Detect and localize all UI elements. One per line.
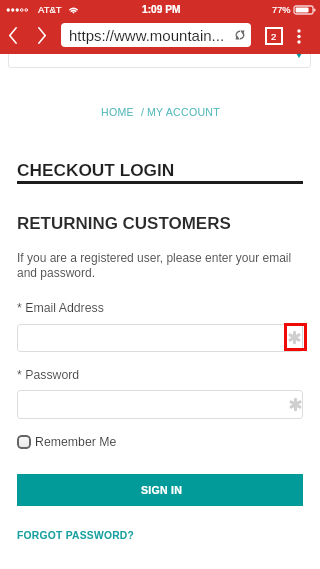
staticText: / — [141, 106, 144, 118]
staticText: HOME — [101, 106, 134, 118]
staticText: AT&T — [38, 4, 62, 15]
staticText: https://www.mountain... — [69, 27, 225, 44]
staticText: RETURNING CUSTOMERS — [17, 214, 231, 233]
staticText: CHECKOUT LOGIN — [17, 160, 175, 179]
button[interactable] — [17, 324, 303, 352]
staticText: * Password — [17, 368, 80, 382]
button[interactable] — [17, 390, 303, 419]
staticText: If you are a registered user, please ent… — [17, 251, 307, 279]
button[interactable]: SIGN IN — [17, 474, 303, 506]
staticText: * Email Address — [17, 301, 104, 315]
button[interactable]: Remember Me — [17, 435, 117, 449]
staticText: SIGN IN — [141, 484, 183, 496]
staticText: MY ACCOUNT — [147, 106, 220, 118]
staticText: 2 — [271, 31, 277, 42]
button[interactable]: More options — [289, 22, 309, 50]
button[interactable]: Forward — [31, 21, 53, 49]
button[interactable]: Tabs — [261, 22, 287, 50]
button[interactable]: Back — [2, 21, 24, 49]
button[interactable]: https://www.mountain... — [61, 23, 251, 47]
staticText: FORGOT PASSWORD? — [17, 530, 135, 542]
staticText: Remember Me — [35, 435, 117, 449]
staticText: 77% — [272, 5, 291, 15]
button[interactable]: HOME — [101, 106, 134, 118]
staticText: 1:09 PM — [142, 4, 181, 15]
button[interactable]: FORGOT PASSWORD? — [17, 530, 135, 542]
button[interactable]: MY ACCOUNT — [147, 106, 220, 118]
